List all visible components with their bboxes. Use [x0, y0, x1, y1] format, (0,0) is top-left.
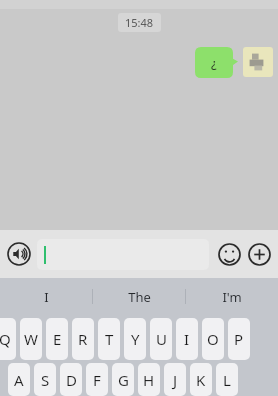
staticText: F	[93, 370, 101, 390]
staticText: I'm	[222, 288, 242, 306]
button[interactable]: T	[98, 318, 120, 360]
staticText: Q	[0, 329, 11, 349]
staticText: W	[24, 329, 38, 349]
button[interactable]: R	[72, 318, 94, 360]
staticText: U	[156, 329, 167, 349]
staticText: P	[234, 329, 244, 349]
button[interactable]: L	[216, 363, 238, 396]
staticText: T	[105, 329, 114, 349]
button[interactable]: Emoji	[214, 239, 244, 269]
button[interactable]	[37, 239, 209, 270]
staticText: K	[196, 370, 206, 390]
button[interactable]: F	[86, 363, 108, 396]
button[interactable]: P	[228, 318, 250, 360]
staticText: D	[66, 370, 77, 390]
staticText: H	[143, 370, 155, 390]
staticText: ¿	[211, 54, 217, 72]
button[interactable]: ¿	[195, 47, 238, 78]
button[interactable]: S	[34, 363, 56, 396]
button[interactable]: Q	[0, 318, 16, 360]
button[interactable]: Voice message	[4, 239, 34, 269]
button[interactable]: Attach	[244, 239, 274, 269]
button[interactable]: U	[150, 318, 172, 360]
staticText: A	[14, 370, 24, 390]
staticText: 15:48	[125, 15, 154, 30]
staticText: The	[128, 288, 151, 306]
button[interactable]: J	[164, 363, 186, 396]
staticText: J	[173, 370, 178, 390]
staticText: L	[223, 370, 231, 390]
button[interactable]: D	[60, 363, 82, 396]
button[interactable]: The	[93, 278, 185, 315]
button[interactable]: A	[8, 363, 30, 396]
button[interactable]: I'm	[186, 278, 278, 315]
staticText: E	[53, 329, 62, 349]
staticText: I	[184, 329, 190, 349]
staticText: G	[118, 370, 129, 390]
button[interactable]: E	[46, 318, 68, 360]
button[interactable]: O	[202, 318, 224, 360]
button[interactable]: H	[138, 363, 160, 396]
button[interactable]: K	[190, 363, 212, 396]
button[interactable]: I	[0, 278, 92, 315]
staticText: R	[78, 329, 88, 349]
button[interactable]: Y	[124, 318, 146, 360]
staticText: Y	[131, 329, 140, 349]
staticText: S	[41, 370, 50, 390]
staticText: I	[44, 288, 49, 306]
button[interactable]: I	[176, 318, 198, 360]
button[interactable]: G	[112, 363, 134, 396]
button[interactable]: W	[20, 318, 42, 360]
button[interactable]: Contact avatar	[243, 47, 273, 77]
staticText: O	[207, 329, 219, 349]
